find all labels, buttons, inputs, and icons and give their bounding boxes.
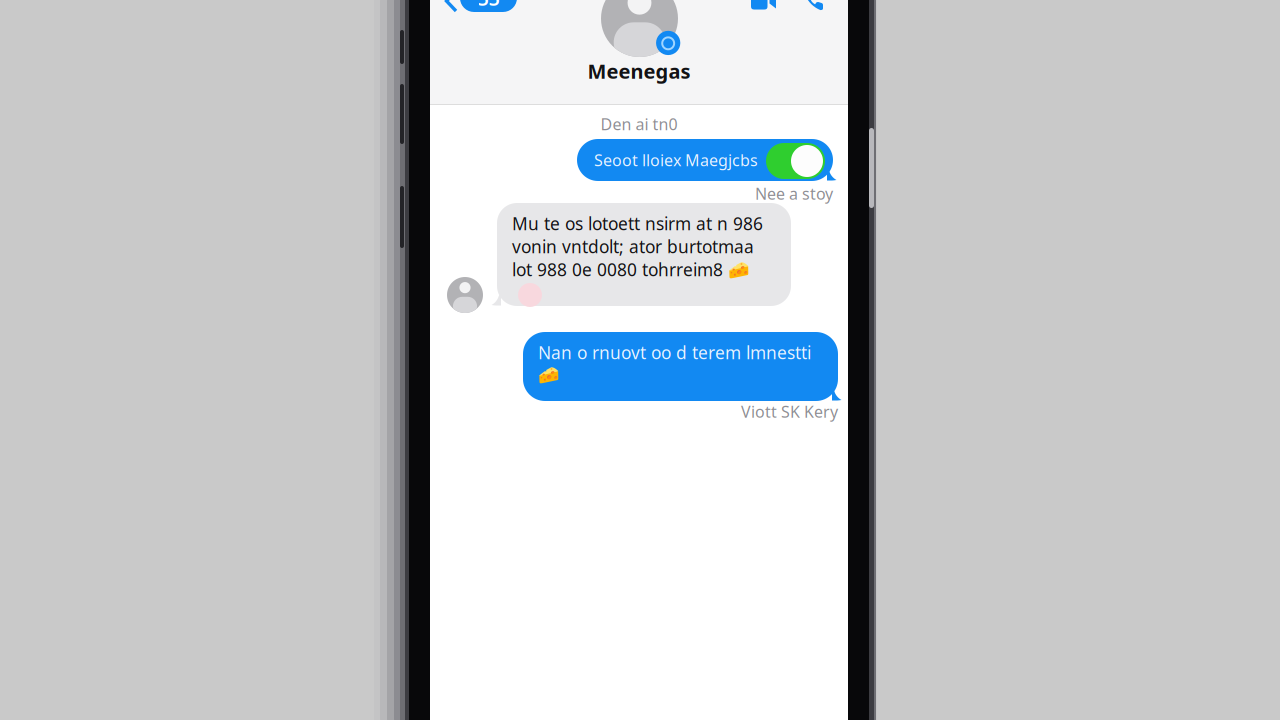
staticText: Mu te os lotoett nsirm at n 986 [512,212,763,235]
button[interactable]: Seoot lloiex Maegjcbs [577,139,833,181]
button[interactable]: Meenegas [601,0,678,85]
button[interactable]: 55 unread messages [460,0,517,12]
staticText: Nee a stoy [755,183,833,204]
staticText: Nan o rnuovt oo d terem lmnestti [538,341,811,364]
staticText: Viott SK Kery [741,401,838,422]
button[interactable]: Audio call [804,0,824,11]
staticText: Den ai tn0 [600,113,677,135]
staticText: Meenegas [587,58,690,84]
staticText: 🧀 [538,365,560,385]
staticText: Seoot lloiex Maegjcbs [594,149,758,171]
button[interactable]: Send Read Receipts, on [766,143,825,179]
button[interactable]: Nan o rnuovt oo d terem lmnestti [523,332,838,401]
staticText: 55 [477,0,499,11]
staticText: vonin vntdolt; ator burtotmaa [512,235,754,258]
button[interactable]: Mu te os lotoett nsirm at n 986 [497,203,791,306]
button[interactable]: Back to Messages [443,0,459,14]
staticText: lot 988 0e 0080 tohrreim8 🧀 [512,258,750,281]
button[interactable]: FaceTime video call [751,0,776,10]
